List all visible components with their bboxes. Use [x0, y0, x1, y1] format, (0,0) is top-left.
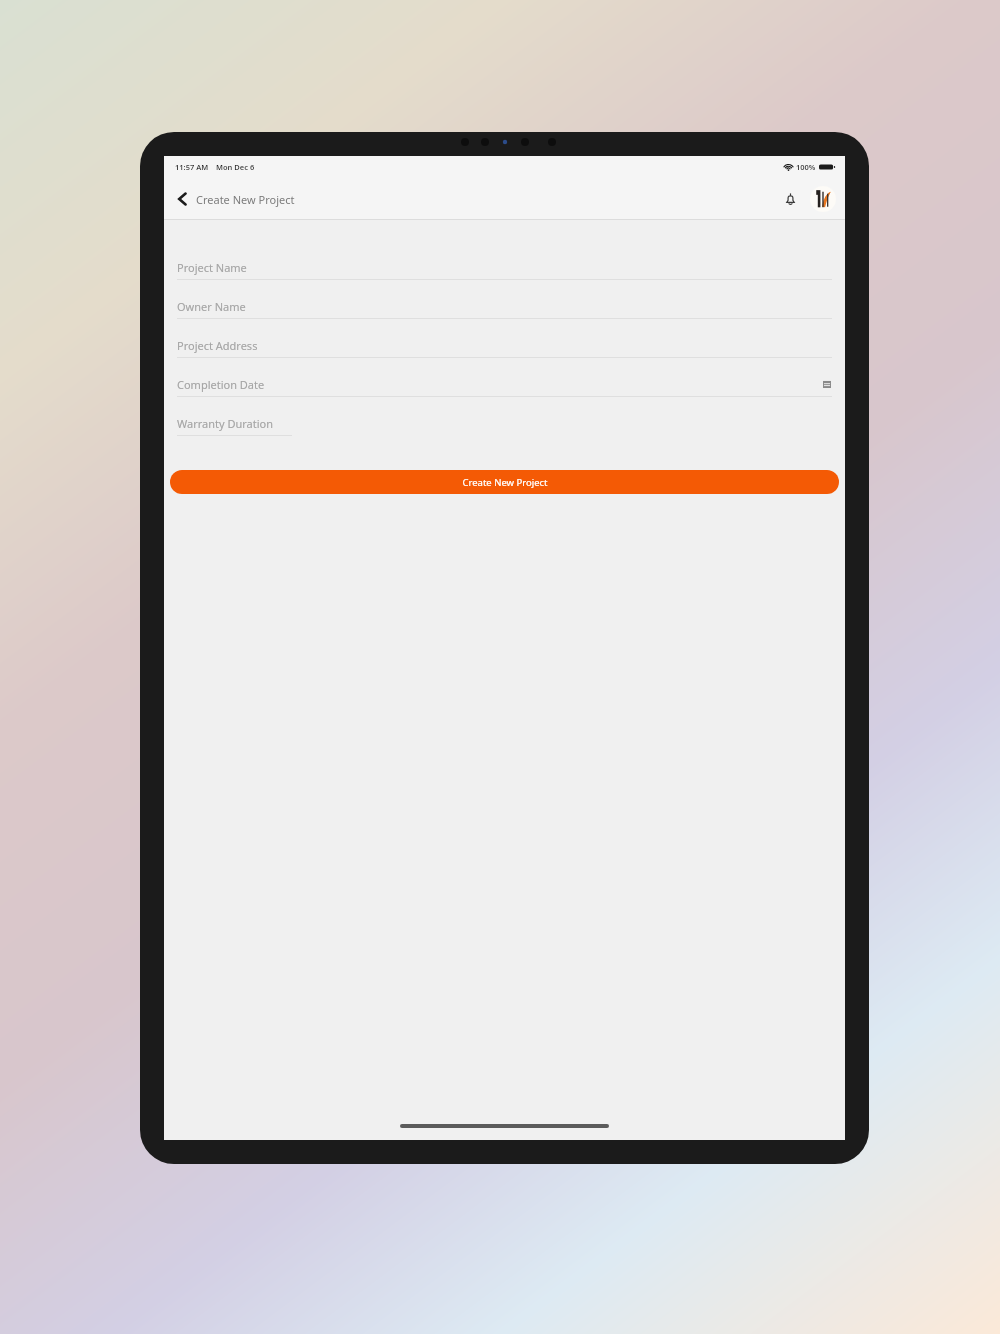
staticText: 11:57 AM	[175, 162, 209, 172]
staticText: Create New Project	[462, 476, 548, 489]
staticText: Warranty Duration	[177, 416, 274, 431]
button[interactable]: Create New Project	[170, 470, 839, 494]
button[interactable]: Notifications	[779, 187, 802, 212]
staticText: Create New Project	[196, 192, 295, 207]
button[interactable]: Owner Name	[164, 292, 845, 331]
staticText: Owner Name	[177, 299, 246, 314]
staticText: Completion Date	[177, 377, 265, 392]
button[interactable]: Back	[164, 185, 303, 213]
staticText: Project Name	[177, 260, 247, 275]
staticText: Mon Dec 6	[216, 162, 255, 172]
other: Back	[177, 191, 188, 207]
other: Pick date	[823, 380, 831, 388]
staticText: Project Address	[177, 338, 258, 353]
button[interactable]: Project Name	[164, 253, 845, 292]
button[interactable]: Profile	[810, 186, 836, 212]
button[interactable]: Warranty Duration	[164, 409, 845, 448]
staticText: 100%	[796, 162, 816, 172]
button[interactable]: Project Address	[164, 331, 845, 370]
button[interactable]: Completion Date	[164, 370, 845, 409]
